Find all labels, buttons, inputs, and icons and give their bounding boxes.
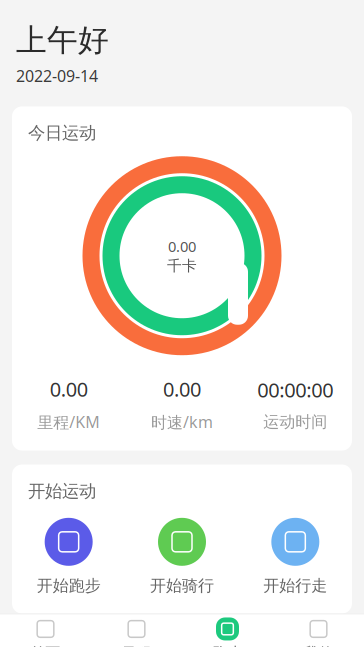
staticText: 0.00 [50, 376, 88, 402]
button[interactable]: 跑步 [182, 614, 273, 647]
staticText: 里程/KM [37, 411, 100, 432]
staticText: 开始行走 [263, 576, 327, 595]
staticText: 开始跑步 [37, 576, 101, 595]
staticText: 今日运动 [28, 122, 96, 144]
button[interactable]: 开始骑行 [125, 516, 239, 597]
staticText: 首页 [30, 644, 60, 647]
staticText: 0.00 [163, 376, 201, 402]
staticText: 跑步 [212, 644, 242, 647]
staticText: 日程 [121, 644, 151, 647]
staticText: 我的 [303, 644, 333, 647]
staticText: 00:00:00 [257, 376, 333, 403]
staticText: 上午好 [16, 21, 109, 59]
button[interactable]: 首页 [0, 614, 91, 647]
staticText: 时速/km [151, 411, 213, 432]
button[interactable]: 日程 [91, 614, 182, 647]
staticText: 千卡 [167, 257, 197, 275]
staticText: 运动时间 [263, 412, 327, 432]
staticText: 0.00 [168, 236, 196, 256]
staticText: 开始运动 [28, 480, 96, 502]
staticText: 开始骑行 [150, 576, 214, 595]
staticText: 2022-09-14 [16, 65, 98, 86]
button[interactable]: 开始行走 [239, 516, 352, 597]
button[interactable]: 开始跑步 [12, 516, 125, 597]
button[interactable]: 我的 [273, 614, 364, 647]
